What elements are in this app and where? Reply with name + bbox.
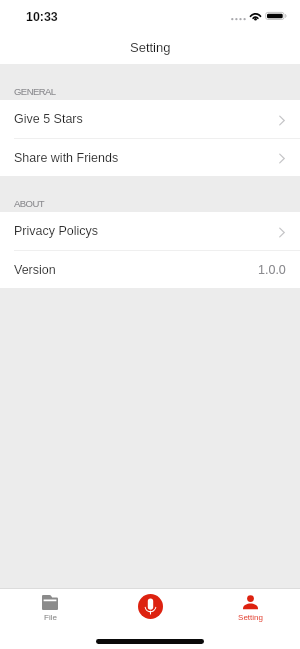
staticText: Setting [130, 40, 171, 55]
button[interactable]: Give 5 Stars [0, 100, 300, 138]
staticText: Share with Friends [14, 151, 119, 165]
staticText: Give 5 Stars [14, 112, 83, 126]
staticText: GENERAL [14, 86, 56, 97]
button[interactable]: Record voice [138, 594, 163, 619]
staticText: Privacy Policys [14, 224, 99, 238]
button[interactable]: File [0, 589, 100, 649]
button[interactable]: Share with Friends [0, 139, 300, 176]
button[interactable]: Version [0, 251, 300, 288]
staticText: Setting [238, 613, 263, 622]
staticText: 1.0.0 [258, 263, 286, 277]
button[interactable]: Setting [200, 589, 300, 649]
staticText: File [44, 613, 57, 622]
staticText: ABOUT [14, 198, 44, 209]
staticText: Version [14, 263, 56, 277]
button[interactable]: Privacy Policys [0, 212, 300, 250]
staticText: 10:33 [26, 10, 58, 24]
